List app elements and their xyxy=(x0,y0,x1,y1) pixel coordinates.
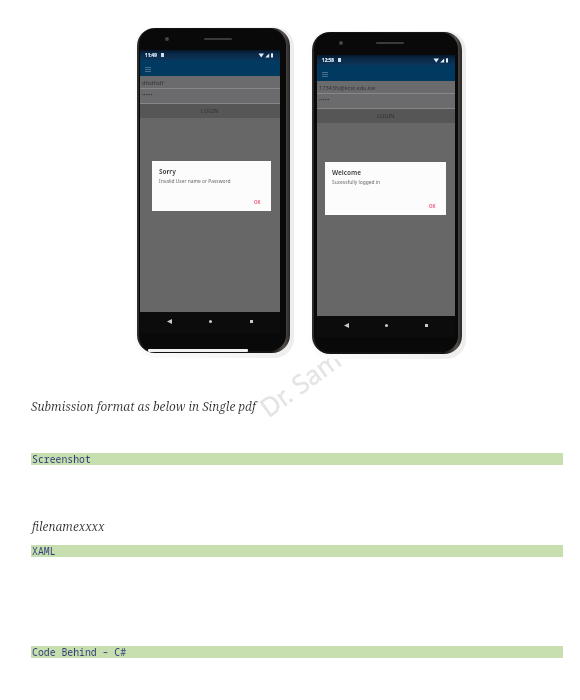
button[interactable]: Menu xyxy=(140,60,280,76)
staticText: •••••• xyxy=(142,92,153,98)
other: Menu xyxy=(145,67,151,72)
staticText: 12:58 xyxy=(322,57,334,63)
staticText: dfsdfsdf xyxy=(142,79,164,87)
button[interactable]: OK xyxy=(254,199,261,205)
button[interactable]: Back xyxy=(341,320,351,330)
button[interactable]: Home xyxy=(205,316,215,326)
staticText: Screenshot xyxy=(32,453,91,465)
staticText: Invalid User name or Password xyxy=(159,178,231,185)
button[interactable]: Screenshot xyxy=(31,453,563,465)
staticText: Code Behind – C# xyxy=(32,646,127,658)
staticText: •••••• xyxy=(319,97,330,103)
button[interactable]: Recents xyxy=(421,320,431,330)
staticText: Sorry xyxy=(159,167,176,176)
other: Menu xyxy=(322,72,328,77)
staticText: Submission format as below in Single pdf xyxy=(31,398,256,414)
staticText: OK xyxy=(254,199,261,205)
button[interactable]: Menu xyxy=(317,65,455,81)
button[interactable]: Back xyxy=(164,316,174,326)
staticText: 11:49 xyxy=(145,52,157,58)
staticText: LOGIN xyxy=(201,107,219,115)
staticText: XAML xyxy=(32,545,56,557)
button[interactable]: Recents xyxy=(246,316,256,326)
staticText: OK xyxy=(429,203,436,209)
button[interactable]: Code Behind – C# xyxy=(31,646,563,658)
button[interactable]: Home xyxy=(381,320,391,330)
staticText: Dr. Sam xyxy=(252,341,345,420)
staticText: filenamexxxx xyxy=(32,518,105,534)
staticText: 17343fs@kcst.edu.kw xyxy=(319,84,376,92)
staticText: Welcome xyxy=(332,168,362,177)
button[interactable]: OK xyxy=(429,203,436,209)
button[interactable]: XAML xyxy=(31,545,563,557)
staticText: Sucessfully logged in xyxy=(332,179,381,186)
staticText: LOGIN xyxy=(377,112,395,120)
